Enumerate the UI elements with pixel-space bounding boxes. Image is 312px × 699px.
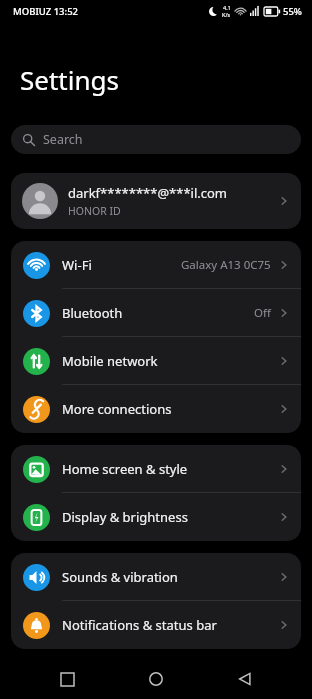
staticText: Notifications & status bar	[62, 616, 217, 634]
staticText: Display & brightness	[62, 508, 188, 526]
button[interactable]: Back	[223, 659, 267, 699]
button[interactable]: Notifications & status bar	[11, 601, 301, 649]
button[interactable]: Home screen & style	[11, 445, 301, 493]
button[interactable]: Wi-Fi	[11, 241, 301, 289]
button[interactable]: Display & brightness	[11, 493, 301, 541]
staticText: Wi-Fi	[62, 256, 92, 274]
button[interactable]: Mobile network	[11, 337, 301, 385]
staticText: Settings	[20, 62, 119, 97]
staticText: More connections	[62, 400, 172, 418]
button[interactable]: Home	[134, 659, 178, 699]
button[interactable]: Search	[11, 125, 301, 154]
staticText: Off	[254, 305, 271, 321]
button[interactable]: Bluetooth	[11, 289, 301, 337]
staticText: Mobile network	[62, 352, 158, 370]
button[interactable]: Recent apps	[45, 659, 89, 699]
staticText: darkf********@***il.com	[68, 184, 228, 202]
button[interactable]: Sounds & vibration	[11, 553, 301, 601]
staticText: K/s	[222, 11, 231, 18]
staticText: Sounds & vibration	[62, 568, 178, 586]
button[interactable]: darkf********@***il.com	[11, 173, 301, 229]
staticText: Search	[43, 131, 83, 148]
staticText: Home screen & style	[62, 460, 188, 478]
staticText: Bluetooth	[62, 304, 123, 322]
staticText: HONOR ID	[68, 204, 121, 218]
staticText: Galaxy A13 0C75	[181, 257, 271, 273]
staticText: MOBIUZ 13:52	[13, 5, 78, 18]
staticText: 55%	[283, 5, 302, 18]
button[interactable]: More connections	[11, 385, 301, 433]
staticText: 4.1	[223, 4, 231, 11]
